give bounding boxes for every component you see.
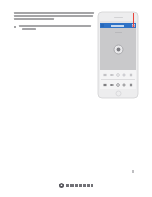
button[interactable]: Camera tool 4	[122, 73, 126, 77]
button[interactable]: Camera tool 1	[103, 83, 107, 87]
button[interactable]: Camera tool 2	[110, 73, 114, 77]
button[interactable]: Camera tool 4	[122, 83, 126, 87]
button[interactable]: Camera tool 3	[116, 73, 120, 77]
button[interactable]: Back	[100, 23, 136, 28]
button[interactable]: PTZ control	[114, 45, 123, 54]
button[interactable]: Camera tool 1	[103, 73, 107, 77]
button[interactable]: Camera tool 2	[110, 83, 114, 87]
button[interactable]: Camera tool 5	[129, 73, 133, 77]
button[interactable]: Camera tool 3	[116, 83, 120, 87]
button[interactable]: Camera tool 5	[129, 83, 133, 87]
other: Settings	[132, 24, 135, 27]
